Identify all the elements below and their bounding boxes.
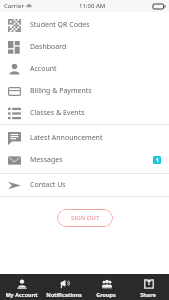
button[interactable]: Student QR Codes xyxy=(0,14,169,36)
button[interactable]: Billing & Payments xyxy=(0,80,169,102)
staticText: Carrier xyxy=(4,2,24,10)
button[interactable]: Account xyxy=(0,58,169,80)
staticText: Dashboard xyxy=(30,42,67,52)
button[interactable]: Classes & Events xyxy=(0,102,169,124)
staticText: Contact Us xyxy=(30,180,66,190)
staticText: Messages xyxy=(30,155,63,165)
button[interactable]: SIGN OUT xyxy=(57,209,113,227)
staticText: Account xyxy=(30,64,57,74)
staticText: SIGN OUT xyxy=(71,214,100,222)
button[interactable]: Share xyxy=(127,274,169,300)
button[interactable]: Latest Announcement xyxy=(0,127,169,149)
button[interactable]: Dashboard xyxy=(0,36,169,58)
button[interactable]: Contact Us xyxy=(0,174,169,196)
staticText: Student QR Codes xyxy=(30,20,90,30)
staticText: My Account xyxy=(5,291,38,298)
staticText: Groups xyxy=(96,291,116,298)
staticText: Latest Announcement xyxy=(30,133,103,143)
staticText: Share xyxy=(140,291,156,298)
staticText: Classes & Events xyxy=(30,108,85,118)
button[interactable]: Notifications xyxy=(43,274,85,300)
staticText: Notifications xyxy=(46,291,82,298)
staticText: Billing & Payments xyxy=(30,86,92,96)
staticText: 1 xyxy=(156,157,159,164)
button[interactable]: Messages xyxy=(0,149,169,171)
button[interactable]: My Account xyxy=(0,274,43,300)
staticText: 11:00 AM xyxy=(79,2,106,10)
button[interactable]: Groups xyxy=(85,274,127,300)
